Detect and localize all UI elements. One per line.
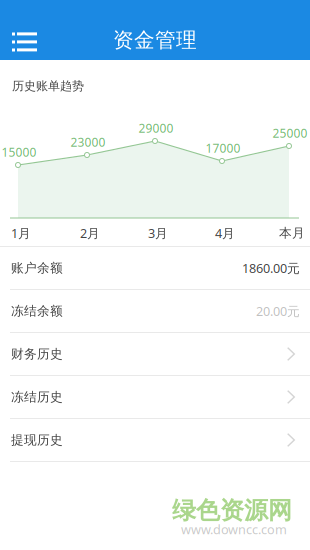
staticText: 1860.00元 (242, 259, 300, 277)
button[interactable]: 财务历史 (0, 333, 310, 375)
staticText: www.downcc.com (181, 521, 287, 538)
staticText: 绿色资源网 (172, 495, 292, 526)
staticText: 3月 (148, 224, 168, 242)
staticText: 20.00元 (256, 302, 300, 320)
staticText: 资金管理 (113, 27, 197, 53)
staticText: 4月 (215, 224, 235, 242)
staticText: 15000 (1, 144, 36, 160)
staticText: 29000 (138, 120, 173, 136)
staticText: 25000 (272, 125, 307, 141)
staticText: 历史账单趋势 (12, 78, 84, 93)
staticText: 冻结余额 (11, 303, 63, 319)
staticText: 17000 (205, 140, 240, 156)
staticText: 1月 (11, 224, 31, 242)
staticText: 本月 (279, 225, 305, 241)
staticText: 财务历史 (11, 346, 63, 362)
staticText: 账户余额 (11, 260, 63, 276)
button[interactable]: 冻结历史 (0, 376, 310, 418)
button[interactable]: 冻结余额 (0, 290, 310, 332)
button[interactable]: 提现历史 (0, 419, 310, 461)
staticText: 提现历史 (11, 432, 63, 448)
staticText: 2月 (80, 224, 100, 242)
staticText: 23000 (70, 134, 105, 150)
button[interactable]: Menu (0, 20, 49, 60)
button[interactable]: 账户余额 (0, 247, 310, 289)
staticText: 冻结历史 (11, 389, 63, 405)
